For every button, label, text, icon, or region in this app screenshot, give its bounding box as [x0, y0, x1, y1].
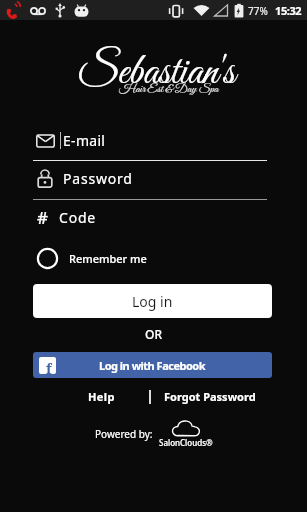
staticText: OR [145, 326, 162, 342]
button[interactable]: # [37, 206, 97, 229]
staticText: Hair Est & Day Spa [119, 82, 219, 97]
staticText: Log in with Facebook [99, 358, 206, 373]
staticText: Log in [132, 292, 173, 311]
staticText: Password [63, 169, 133, 188]
staticText: f [46, 359, 52, 374]
staticText: Code [59, 208, 97, 227]
button[interactable]: f [33, 352, 272, 378]
staticText: Sebastian's [77, 46, 236, 101]
staticText: SalonClouds® [159, 437, 213, 448]
staticText: # [37, 206, 48, 229]
staticText: 15:32 [275, 3, 302, 18]
staticText: E-mail [63, 131, 106, 150]
button[interactable]: E-mail [36, 131, 106, 150]
staticText: 77% [248, 4, 268, 18]
staticText: Powered by: [95, 427, 153, 441]
button[interactable]: Forgot Password [164, 389, 256, 404]
button[interactable]: Remember me [37, 248, 147, 269]
staticText: Remember me [69, 251, 147, 266]
button[interactable]: Help [88, 389, 115, 404]
button[interactable]: Password [37, 169, 133, 188]
button[interactable]: Log in [33, 284, 272, 318]
